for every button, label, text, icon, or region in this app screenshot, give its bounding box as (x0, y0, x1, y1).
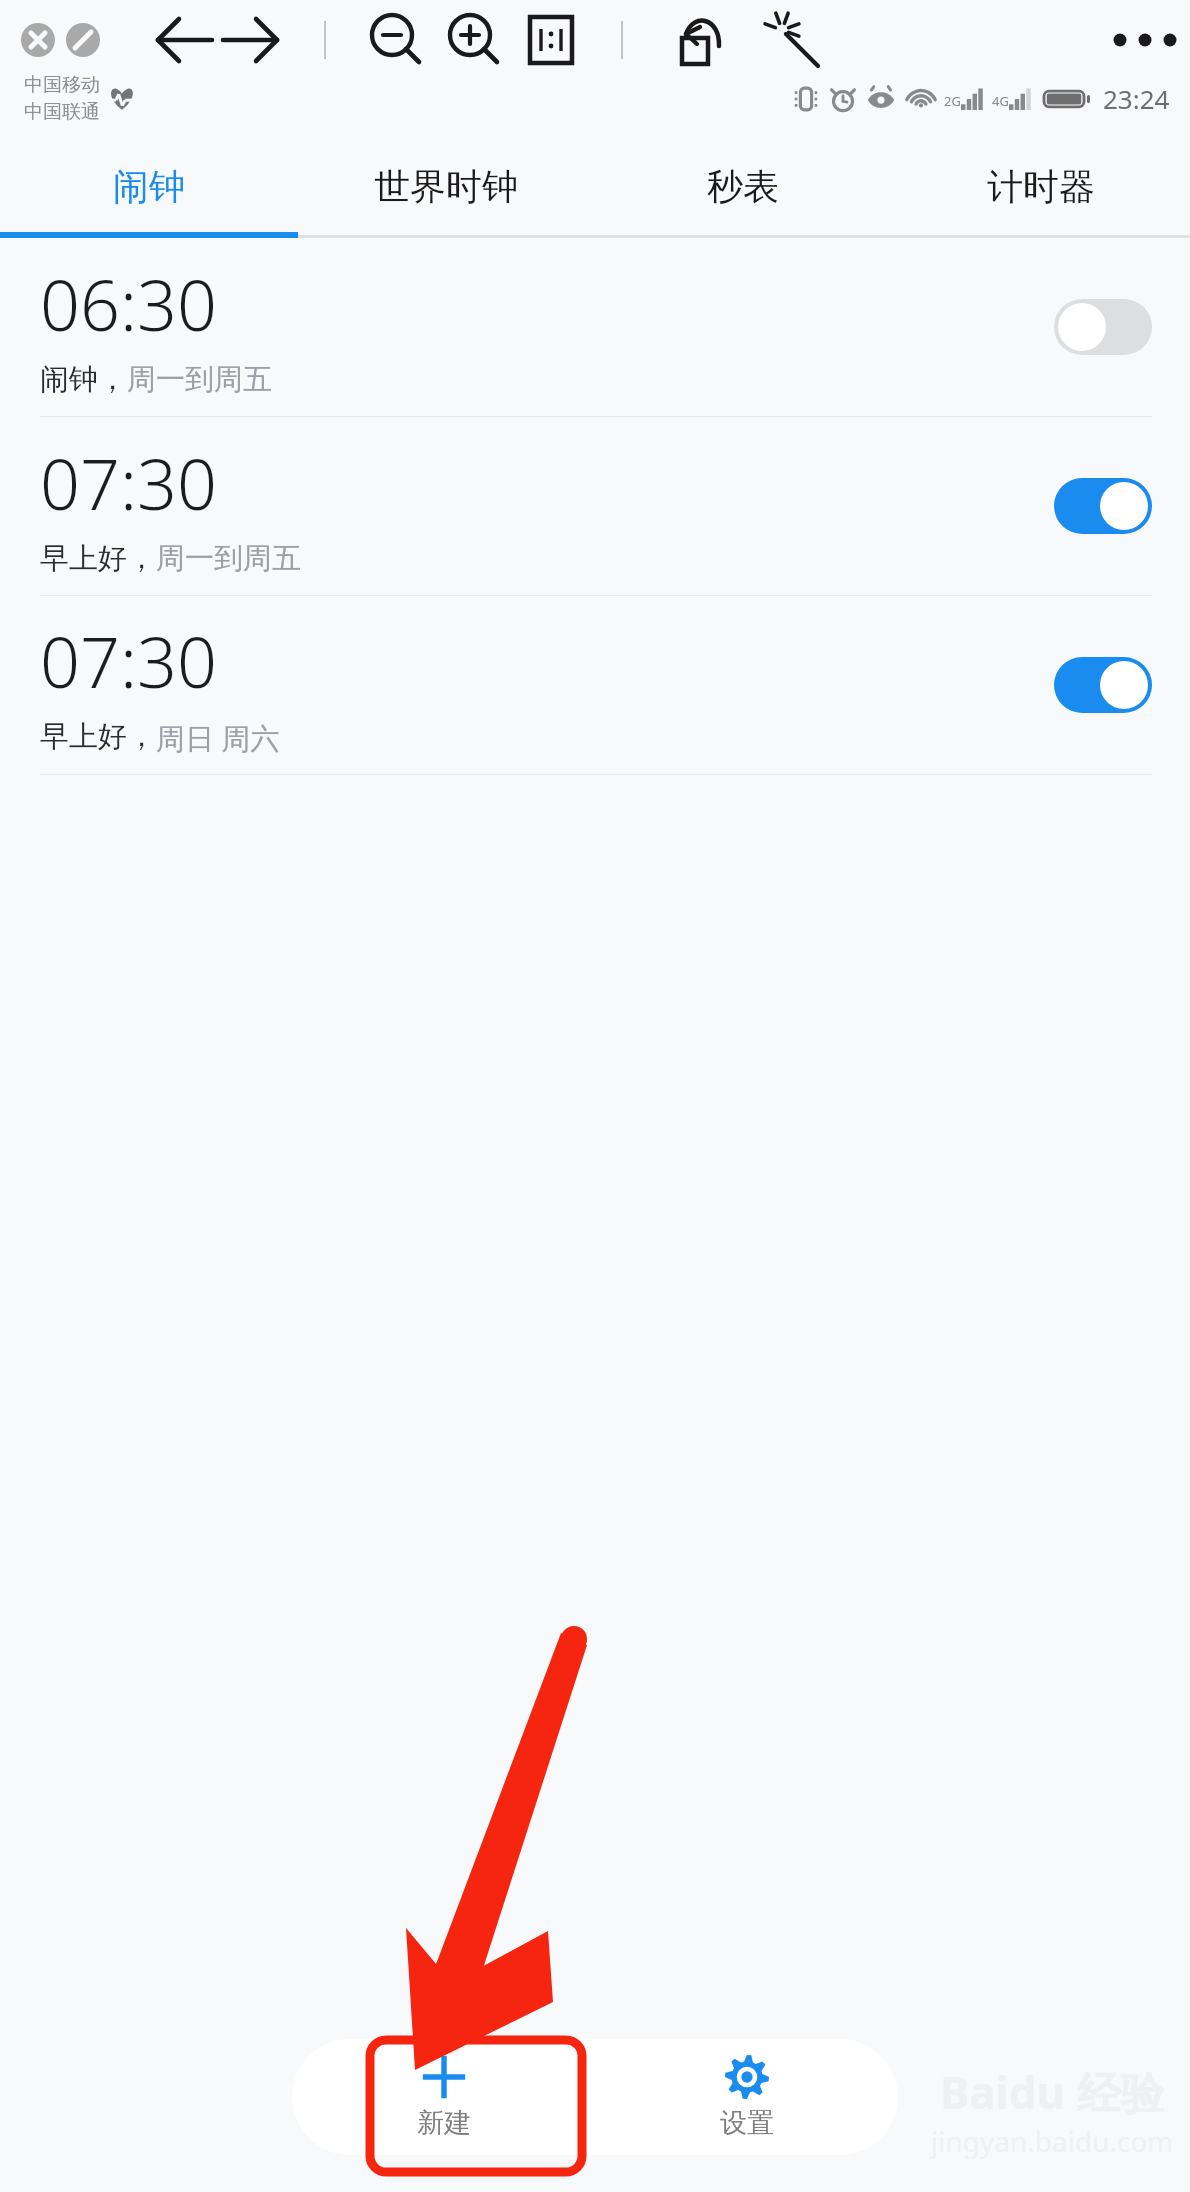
button[interactable]: New alarm (292, 2039, 595, 2155)
other: Settings (724, 2054, 770, 2100)
button[interactable]: 世界时钟 (297, 134, 594, 238)
staticText: 2G (944, 92, 961, 110)
staticText: 07:30 (40, 435, 217, 530)
staticText: Baidu 经验 (940, 2062, 1165, 2122)
staticText: 4G (992, 92, 1009, 110)
staticText: 秒表 (707, 164, 779, 209)
staticText: 闹钟 (113, 164, 185, 209)
staticText: 07:30 (40, 613, 217, 708)
staticText: 中国联通 (24, 100, 100, 124)
staticText: jingyan.baidu.com (931, 2122, 1174, 2160)
button[interactable]: Alarm enabled (1054, 478, 1152, 534)
button[interactable]: Settings (595, 2039, 898, 2155)
button[interactable]: 计时器 (892, 134, 1190, 238)
staticText: 新建 (417, 2106, 471, 2140)
button[interactable]: 06:30 (0, 238, 1190, 417)
button[interactable]: Alarm enabled (1054, 657, 1152, 713)
staticText: 周一到周五 (127, 361, 272, 398)
button[interactable]: 07:30 (0, 596, 1190, 775)
staticText: 早上好， (40, 718, 156, 755)
staticText: 设置 (720, 2106, 774, 2140)
button[interactable]: 秒表 (594, 134, 892, 238)
staticText: 世界时钟 (374, 164, 518, 209)
staticText: 06:30 (40, 256, 217, 351)
staticText: 周一到周五 (156, 540, 301, 577)
staticText: 计时器 (987, 164, 1095, 209)
button[interactable]: 闹钟 (0, 134, 297, 238)
button[interactable]: 07:30 (0, 417, 1190, 596)
button[interactable]: Alarm disabled (1054, 299, 1152, 355)
staticText: 23:24 (1103, 81, 1170, 116)
staticText: 中国移动 (24, 73, 100, 97)
staticText: 周日 周六 (156, 718, 280, 758)
staticText: 闹钟， (40, 361, 127, 398)
other: New alarm (421, 2054, 467, 2100)
staticText: 早上好， (40, 540, 156, 577)
